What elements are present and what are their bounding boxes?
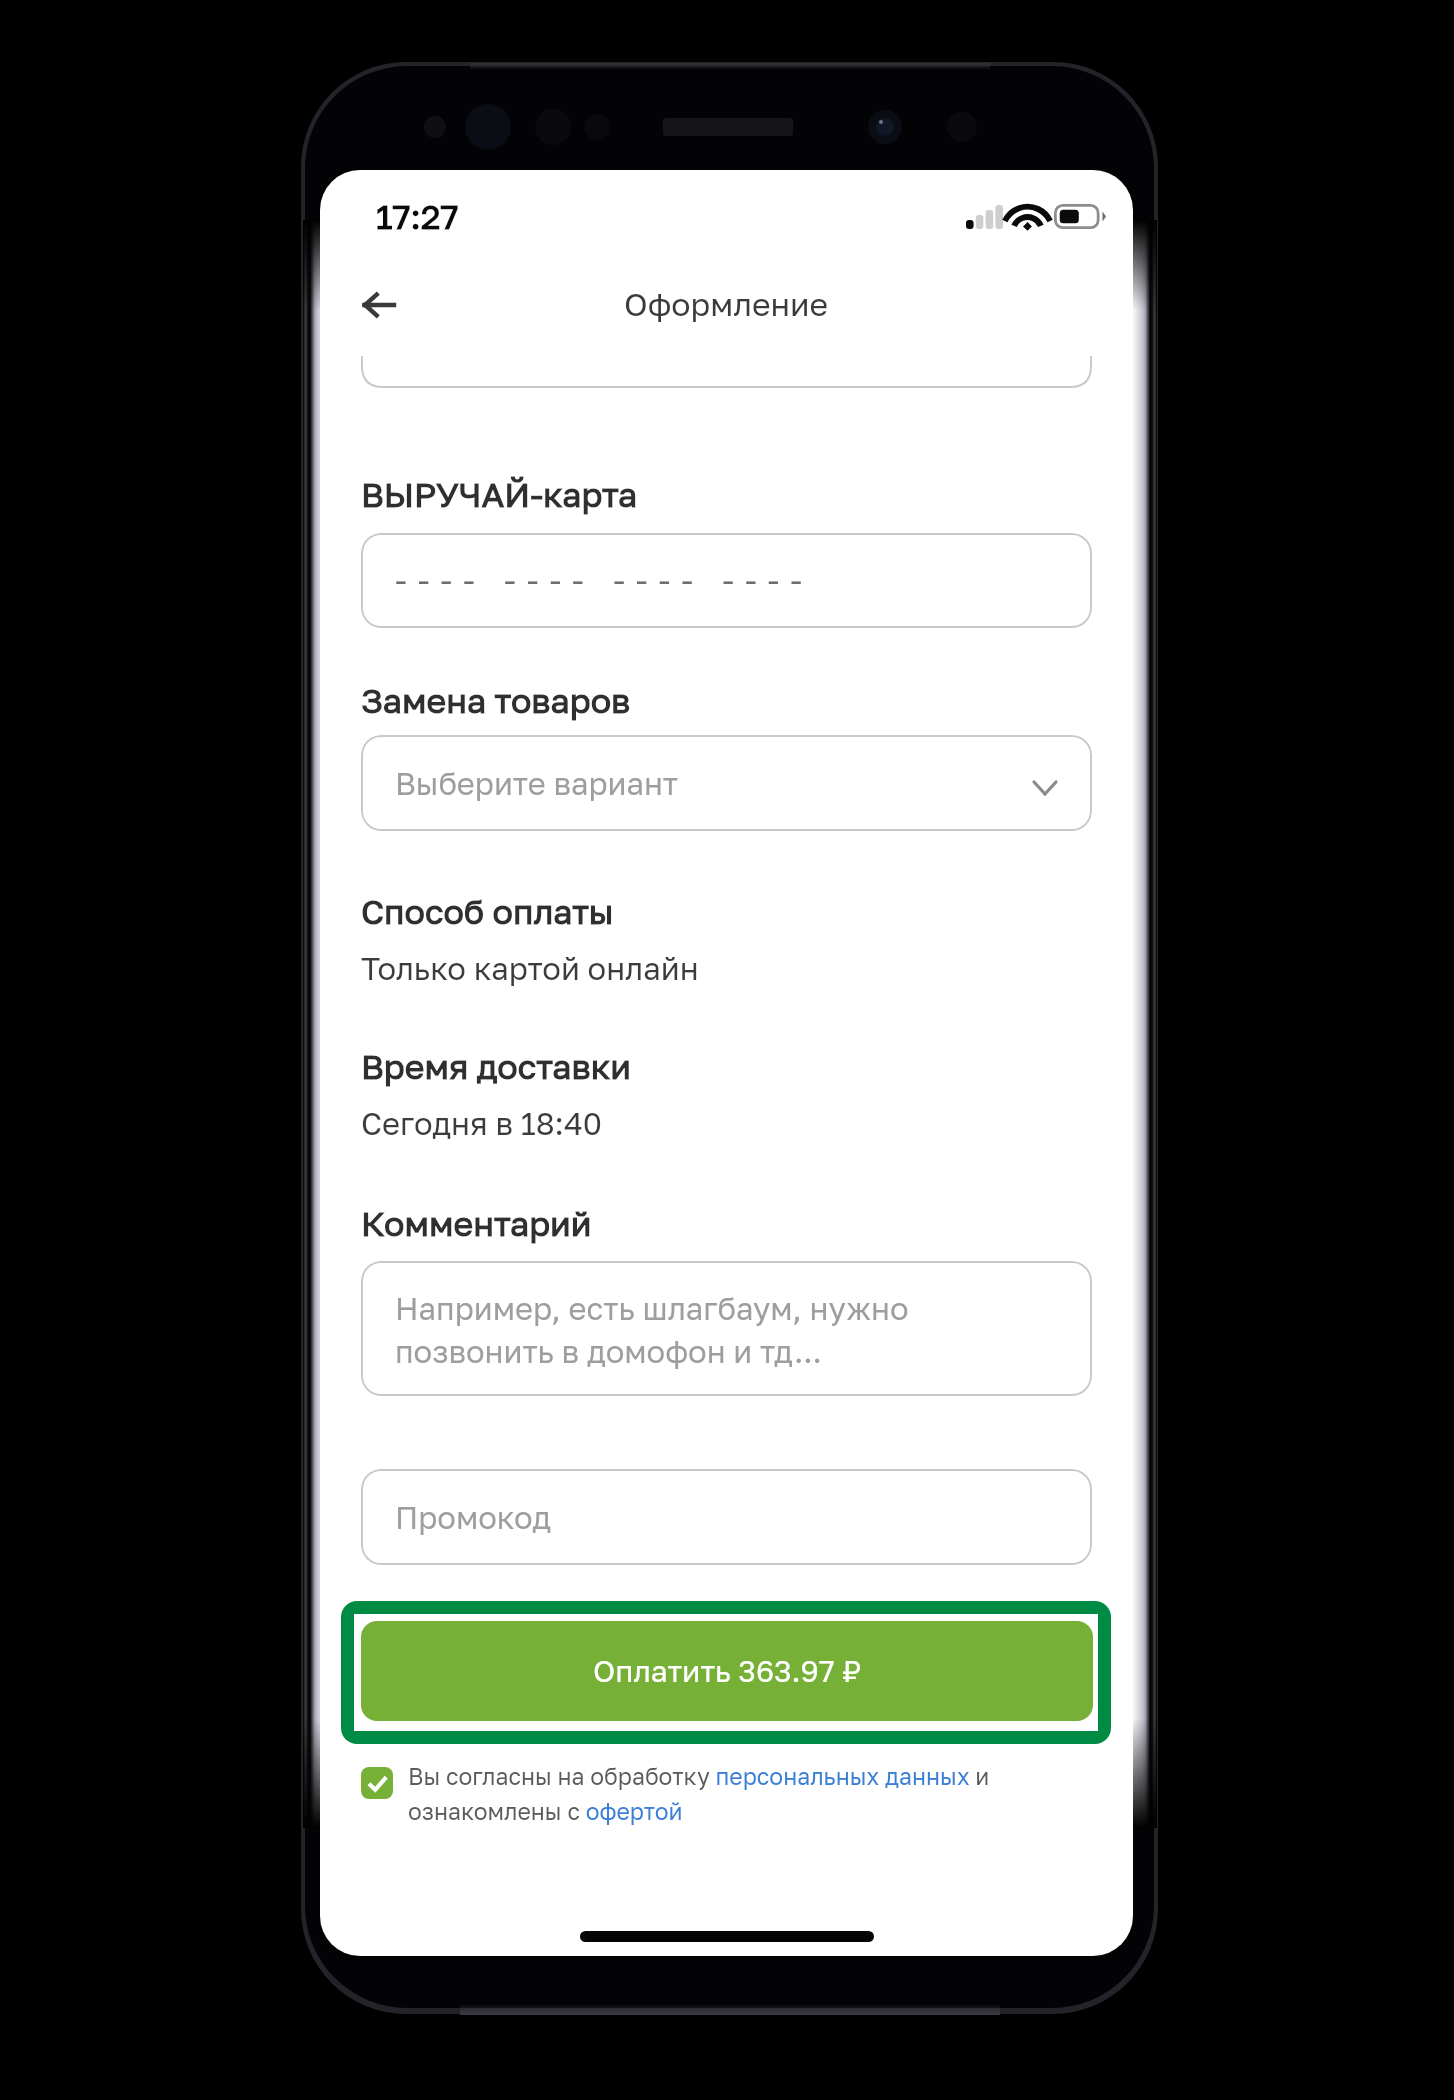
- staticText: Время доставки: [361, 1046, 631, 1087]
- staticText: Оформление: [624, 285, 829, 323]
- staticText: Промокод: [395, 1499, 552, 1536]
- button[interactable]: Выберите вариант: [361, 735, 1092, 831]
- staticText: Вы согласны на обработку персональных да…: [408, 1762, 1023, 1825]
- staticText: Только картой онлайн: [361, 950, 699, 987]
- button[interactable]: Назад: [336, 263, 420, 347]
- staticText: Замена товаров: [361, 680, 631, 721]
- staticText: Выберите вариант: [395, 765, 679, 802]
- staticText: Комментарий: [361, 1203, 592, 1244]
- staticText: Сегодня в 18:40: [361, 1105, 603, 1142]
- staticText: Способ оплаты: [361, 891, 614, 932]
- staticText: Оплатить 363.97 ₽: [593, 1653, 862, 1689]
- staticText: Например, есть шлагбаум, нужно позвонить…: [395, 1290, 1035, 1370]
- button[interactable]: Согласие с условиями: [361, 1767, 393, 1799]
- button[interactable]: Оплатить 363.97 ₽: [361, 1621, 1093, 1721]
- staticText: 17:27: [376, 196, 459, 237]
- staticText: - - - - - - - - - - - - - - - -: [395, 562, 804, 599]
- staticText: ВЫРУЧАЙ-карта: [361, 474, 638, 515]
